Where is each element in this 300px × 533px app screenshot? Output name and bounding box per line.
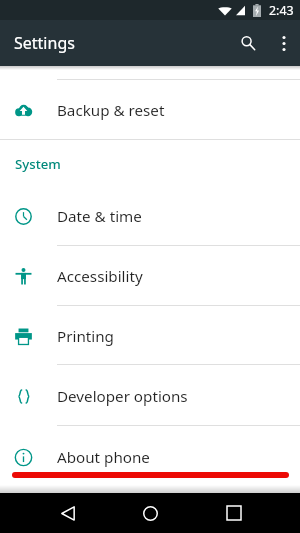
staticText: Printing (57, 326, 114, 347)
staticText: System (15, 155, 61, 173)
button[interactable]: Home (129, 493, 171, 533)
staticText: Developer options (57, 386, 188, 407)
button[interactable]: Printing (0, 306, 300, 364)
button[interactable]: Search (228, 23, 268, 63)
staticText: Accessibility (57, 266, 143, 287)
staticText: Backup & reset (57, 100, 165, 121)
button[interactable]: About phone (0, 426, 300, 486)
button[interactable]: Back (47, 493, 89, 533)
button[interactable]: Recents (213, 493, 255, 533)
button[interactable]: More options (268, 27, 300, 59)
button[interactable]: Backup & reset (0, 80, 300, 139)
staticText: Date & time (57, 206, 142, 227)
staticText: 2:43 (269, 2, 294, 19)
staticText: Settings (14, 32, 75, 54)
staticText: About phone (57, 447, 150, 468)
button[interactable]: Accessibility (0, 246, 300, 305)
button[interactable]: Developer options (0, 365, 300, 425)
button[interactable]: Date & time (0, 186, 300, 245)
